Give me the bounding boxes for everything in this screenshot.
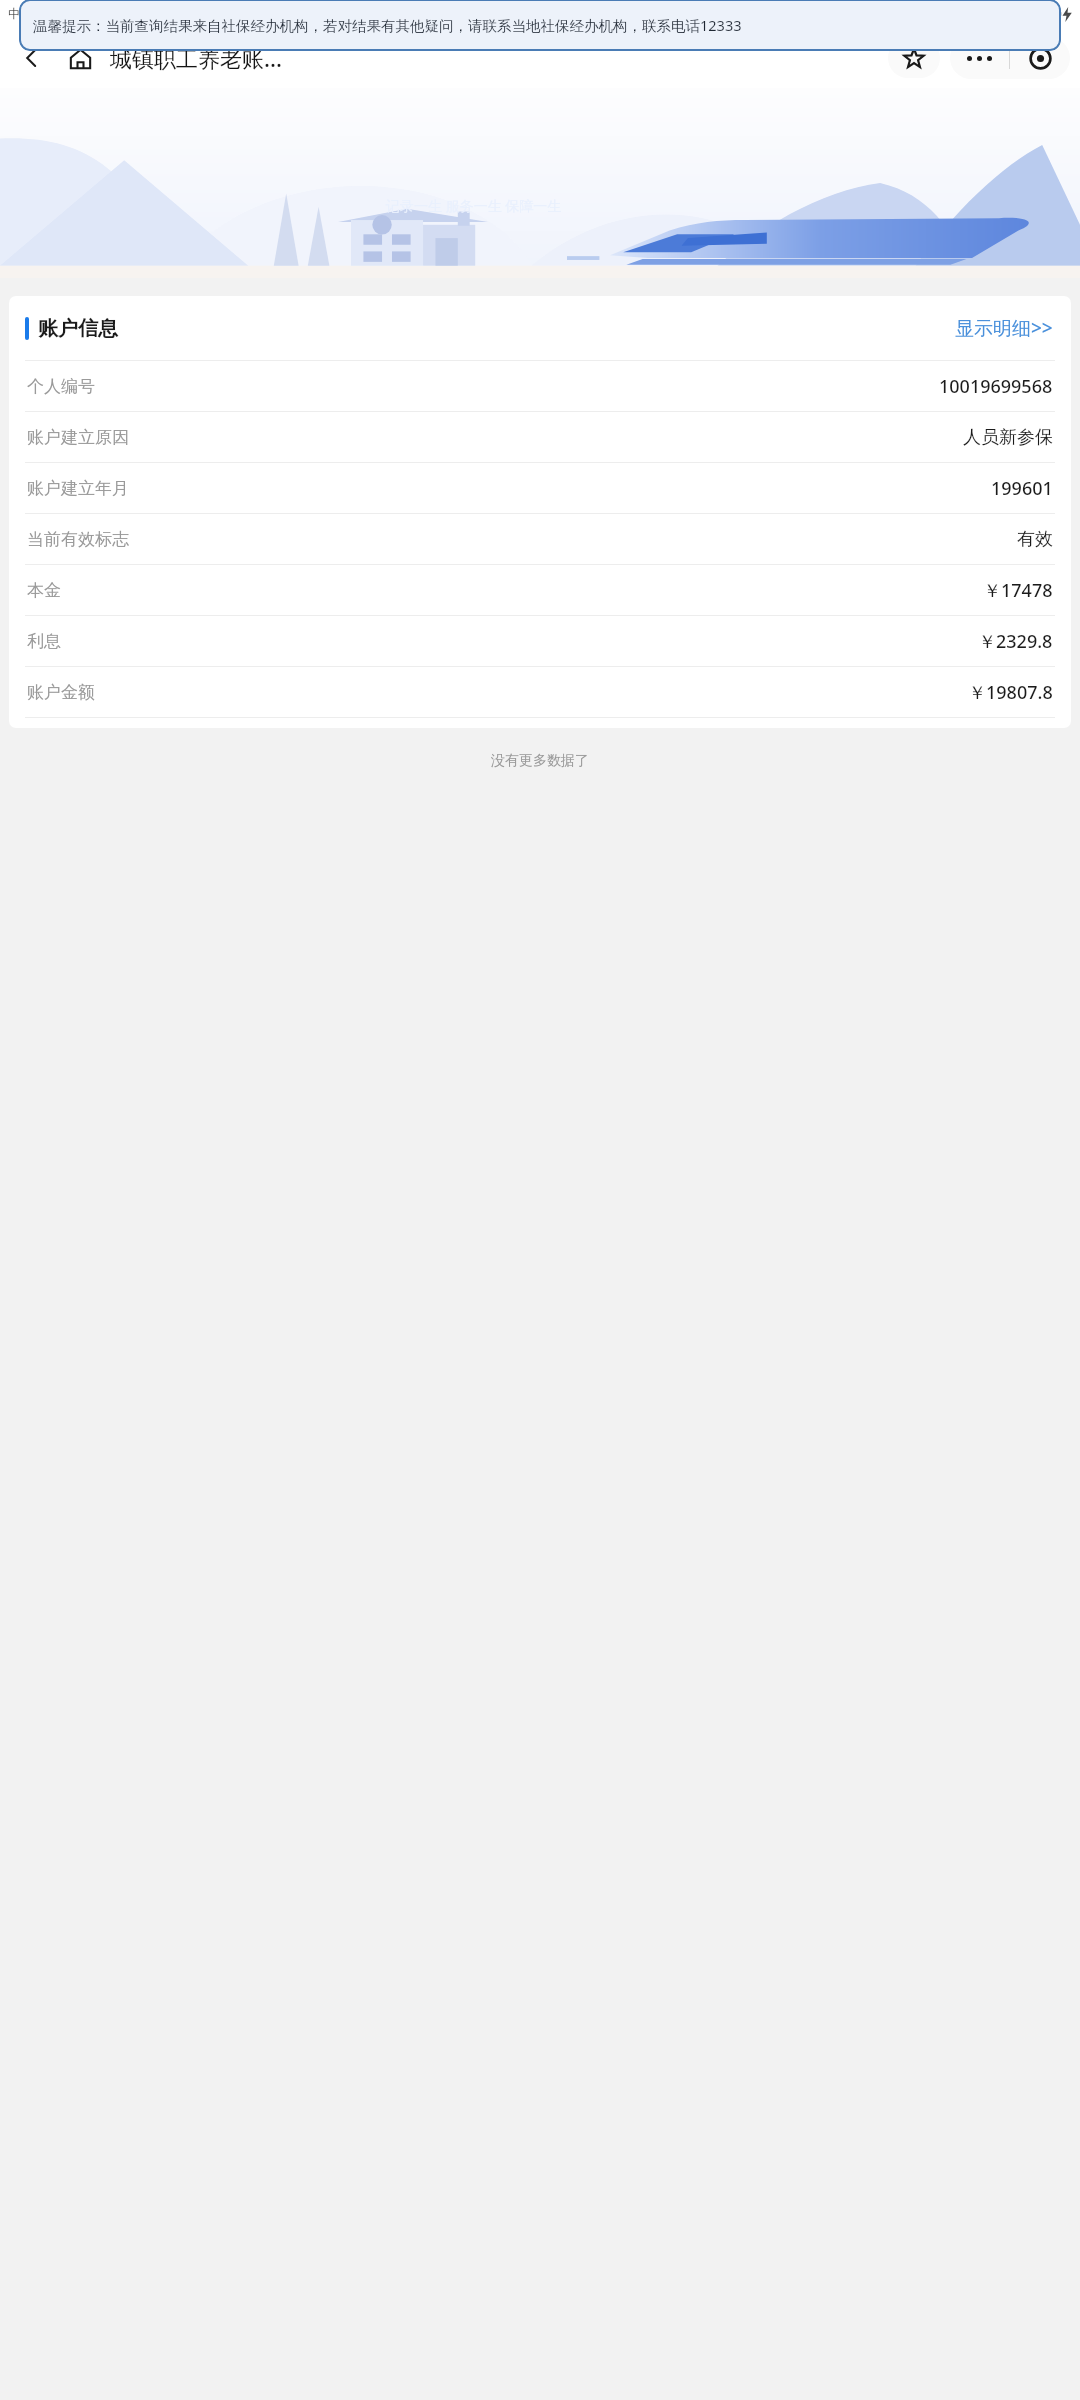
button[interactable]: More options	[950, 37, 1009, 79]
staticText: 当前有效标志	[27, 529, 129, 550]
button[interactable]: Close	[1010, 37, 1070, 79]
staticText: 人员新参保	[963, 426, 1053, 449]
staticText: 199601	[991, 476, 1053, 501]
staticText: 记录一生 服务一生 保障一生	[386, 196, 562, 215]
staticText: 中国电信 12:32	[8, 5, 94, 22]
staticText: 账户信息	[38, 316, 118, 341]
staticText: 个人编号	[27, 376, 95, 397]
button[interactable]: 显示明细>>	[953, 309, 1055, 347]
staticText: 10019699568	[939, 374, 1053, 399]
button[interactable]: Favorite	[888, 38, 940, 78]
button[interactable]: 当前有效标志	[9, 514, 1071, 564]
button[interactable]: 利息	[9, 616, 1071, 666]
staticText: 没有更多数据了	[0, 752, 1080, 770]
staticText: 账户金额	[27, 682, 95, 703]
button[interactable]: 账户建立原因	[9, 412, 1071, 462]
button[interactable]: 个人编号	[9, 361, 1071, 411]
staticText: 显示明细>>	[955, 315, 1053, 341]
staticText: 账户建立原因	[27, 427, 129, 448]
staticText: 本金	[27, 580, 61, 601]
staticText: 有效	[1017, 528, 1053, 551]
staticText: 温馨提示：当前查询结果来自社保经办机构，若对结果有其他疑问，请联系当地社保经办机…	[33, 15, 742, 35]
staticText: ￥19807.8	[968, 680, 1053, 705]
button[interactable]: Back	[10, 36, 54, 80]
button[interactable]: 账户建立年月	[9, 463, 1071, 513]
staticText: 利息	[27, 631, 61, 652]
button[interactable]: 本金	[9, 565, 1071, 615]
staticText: 账户建立年月	[27, 478, 129, 499]
button[interactable]: Home	[58, 36, 102, 80]
staticText: ￥2329.8	[978, 629, 1053, 654]
staticText: ￥17478	[983, 578, 1053, 603]
staticText: 城镇职工养老账...	[110, 43, 282, 73]
button[interactable]: 账户金额	[9, 667, 1071, 717]
